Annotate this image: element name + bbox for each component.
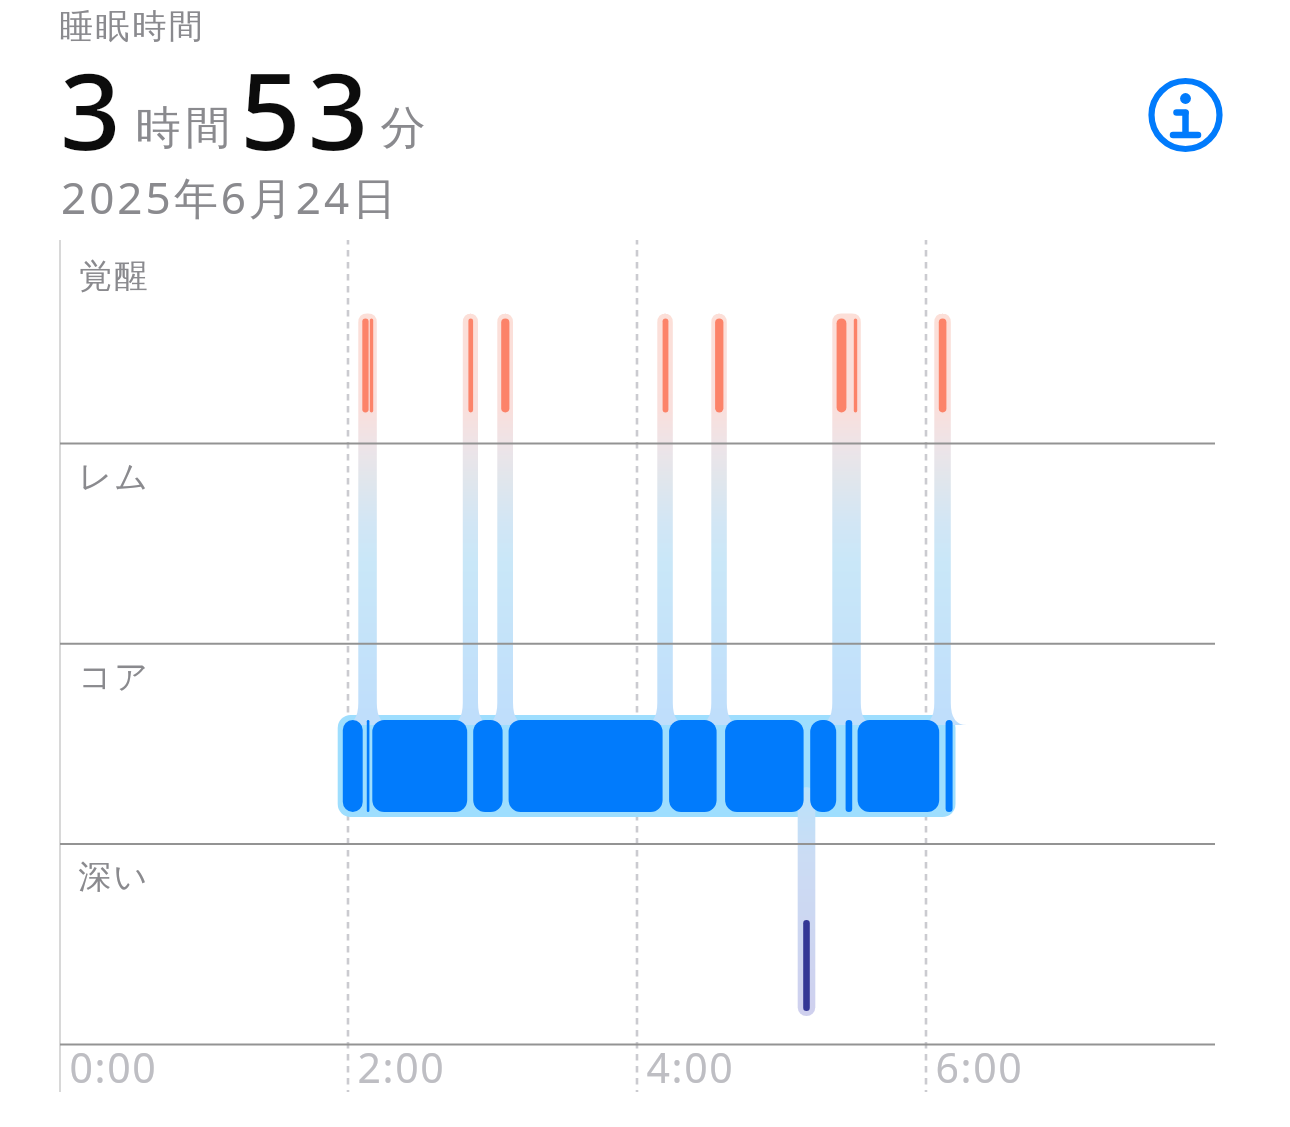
button[interactable]: 睡眠時間について: [1140, 70, 1232, 162]
